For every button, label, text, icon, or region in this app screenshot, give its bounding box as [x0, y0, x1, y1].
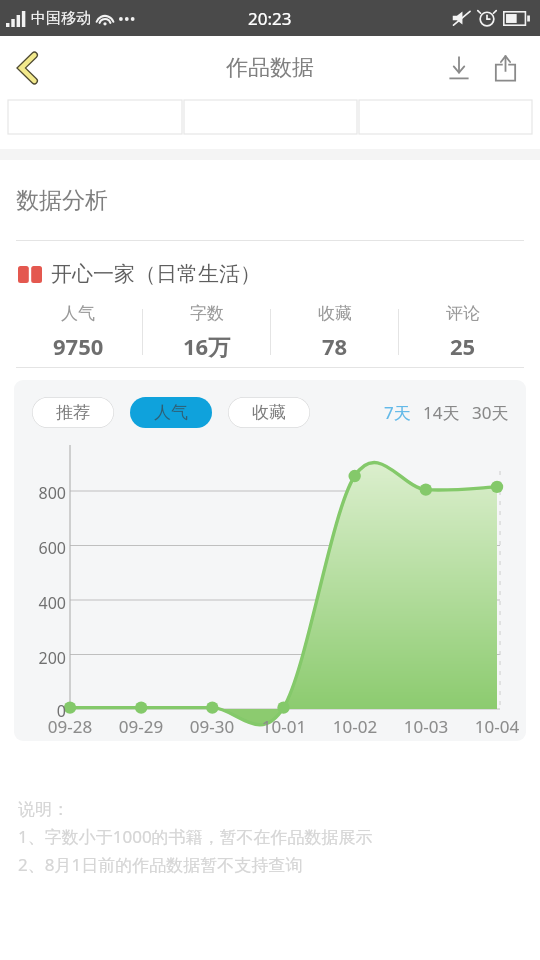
staticText: 600 — [18, 537, 66, 559]
staticText: 400 — [18, 592, 66, 614]
staticText: 20:23 — [248, 7, 292, 30]
button[interactable]: 人气 — [130, 397, 212, 428]
staticText: 2、8月1日前的作品数据暂不支持查询 — [18, 853, 303, 876]
staticText: 开心一家（日常生活） — [51, 261, 261, 287]
staticText: 收藏 — [318, 303, 352, 324]
staticText: 10-01 — [254, 715, 314, 738]
staticText: 25 — [450, 331, 476, 361]
staticText: 09-29 — [111, 715, 171, 738]
staticText: 10-03 — [396, 715, 456, 738]
button[interactable]: 14天 — [422, 397, 461, 428]
staticText: 数据分析 — [16, 186, 108, 215]
staticText: 人气 — [154, 402, 188, 423]
staticText: 7天 — [384, 401, 411, 424]
staticText: 10-02 — [325, 715, 385, 738]
staticText: 中国移动 — [31, 9, 91, 28]
button[interactable]: Download — [436, 45, 482, 91]
staticText: 收藏 — [252, 402, 286, 423]
staticText: 78 — [322, 331, 348, 361]
button[interactable]: 收藏 — [228, 397, 310, 428]
staticText: 800 — [18, 482, 66, 504]
staticText: 人气 — [61, 303, 95, 324]
button[interactable]: Share — [482, 45, 528, 91]
staticText: 0 — [18, 700, 66, 722]
staticText: 评论 — [446, 303, 480, 324]
staticText: 16万 — [183, 331, 231, 361]
staticText: 200 — [18, 647, 66, 669]
button[interactable]: 推荐 — [32, 397, 114, 428]
staticText: 09-28 — [40, 715, 100, 738]
staticText: 10-04 — [467, 715, 526, 738]
button[interactable]: 7天 — [383, 397, 412, 428]
button[interactable]: Back — [0, 40, 56, 96]
staticText: 说明： — [18, 799, 69, 820]
staticText: 作品数据 — [226, 54, 314, 82]
staticText: 1、字数小于1000的书籍，暂不在作品数据展示 — [18, 825, 373, 848]
staticText: 09-30 — [182, 715, 242, 738]
staticText: 推荐 — [56, 402, 90, 423]
staticText: 9750 — [53, 331, 104, 361]
button[interactable]: 30天 — [471, 397, 510, 428]
staticText: 14天 — [423, 401, 460, 424]
staticText: 30天 — [472, 401, 509, 424]
staticText: 字数 — [190, 303, 224, 324]
